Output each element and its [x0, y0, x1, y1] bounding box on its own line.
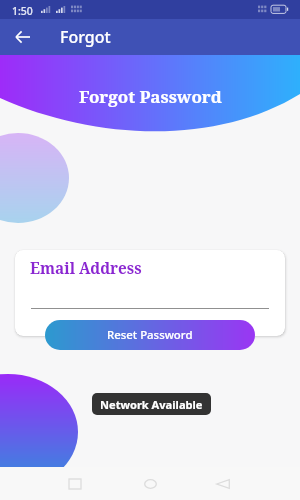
staticText: 1:50: [12, 4, 33, 18]
button[interactable]: Back: [209, 470, 237, 498]
button[interactable]: Reset Password: [45, 320, 255, 350]
staticText: Forgot Password: [79, 85, 222, 108]
staticText: Forgot: [60, 26, 111, 48]
button[interactable]: Recent apps: [61, 470, 89, 498]
staticText: Email Address: [30, 258, 142, 279]
staticText: Reset Password: [107, 327, 193, 343]
button[interactable]: Back: [5, 19, 41, 55]
staticText: Network Available: [100, 397, 203, 412]
button[interactable]: Home: [136, 470, 164, 498]
